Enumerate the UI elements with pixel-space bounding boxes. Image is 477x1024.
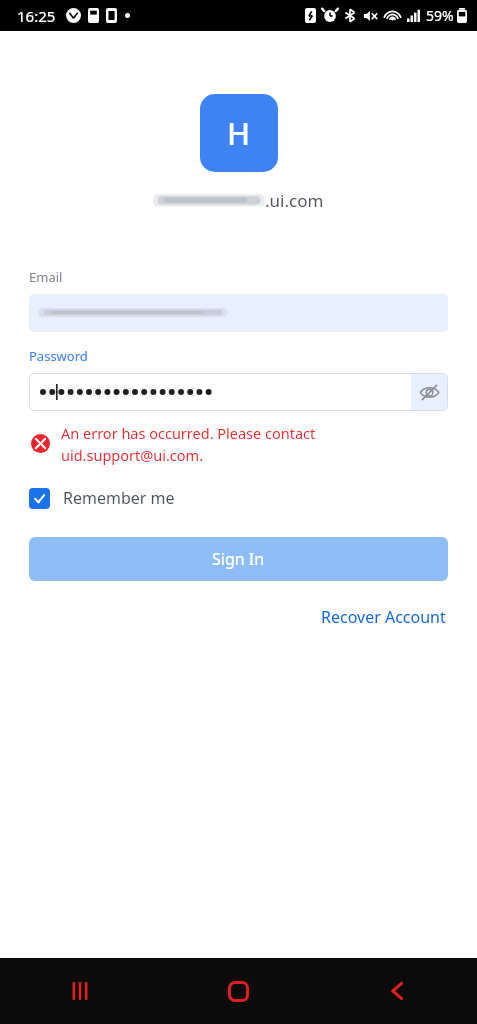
button[interactable]: Recover Account bbox=[319, 603, 448, 631]
button[interactable]: Recent apps bbox=[0, 958, 159, 1024]
staticText: H bbox=[227, 112, 251, 154]
button[interactable]: Show password bbox=[29, 373, 448, 411]
staticText: 59% bbox=[426, 6, 454, 25]
button[interactable]: Sign In bbox=[29, 537, 448, 581]
button[interactable]: Show password bbox=[411, 374, 448, 410]
staticText: .ui.com bbox=[265, 189, 324, 212]
staticText: Remember me bbox=[63, 487, 175, 509]
staticText: Recover Account bbox=[321, 606, 446, 628]
staticText: 16:25 bbox=[17, 6, 56, 26]
button[interactable]: Home bbox=[159, 958, 318, 1024]
button[interactable]: Remember me bbox=[29, 487, 175, 509]
staticText: An error has occurred. Please contact bbox=[61, 423, 316, 443]
button[interactable] bbox=[29, 294, 448, 332]
staticText: uid.support@ui.com. bbox=[61, 445, 204, 465]
staticText: Password bbox=[29, 347, 88, 365]
staticText: Sign In bbox=[212, 548, 265, 570]
button[interactable]: Back bbox=[318, 958, 477, 1024]
staticText: Email bbox=[29, 268, 63, 286]
